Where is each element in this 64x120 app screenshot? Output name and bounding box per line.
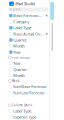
- button[interactable]: Assistant: [50, 2, 54, 20]
- button[interactable]: Label Type: [8, 108, 49, 114]
- button[interactable]: Month: [8, 72, 49, 78]
- staticText: Month: [13, 73, 24, 78]
- staticText: +: [10, 1, 12, 6]
- button[interactable]: Month: [8, 43, 49, 49]
- button[interactable]: Search: [9, 7, 49, 11]
- staticText: Month: [13, 43, 24, 49]
- staticText: SumLast Forecast: [13, 90, 44, 95]
- staticText: Column Labels: [12, 103, 32, 107]
- staticText: Category: [13, 19, 29, 24]
- staticText: Label Type: [13, 25, 31, 30]
- button[interactable]: Base Actual Over All: [8, 31, 49, 37]
- button[interactable]: Year: [8, 49, 49, 55]
- staticText: Quarter: [13, 67, 27, 72]
- staticText: Search: [13, 8, 21, 11]
- staticText: Week: [12, 79, 19, 83]
- staticText: Quarter: [13, 37, 27, 43]
- button[interactable]: Year: [8, 60, 49, 66]
- button[interactable]: App icon: [9, 1, 14, 6]
- staticText: Year: [13, 61, 21, 66]
- staticText: Price Groups: [12, 56, 30, 59]
- staticText: Base Forecast Over All: [13, 13, 44, 18]
- staticText: iPad Build: [15, 1, 35, 6]
- staticText: Expense Type: [13, 114, 36, 120]
- staticText: Label Type: [13, 108, 31, 113]
- button[interactable]: Base Forecast Over All: [8, 12, 49, 19]
- button[interactable]: Category: [8, 19, 49, 25]
- button[interactable]: SumLast Forecast: [8, 90, 49, 96]
- button[interactable]: Expense Type: [8, 114, 49, 120]
- staticText: Year: [13, 49, 21, 55]
- staticText: Base Actual Over All: [13, 31, 44, 36]
- staticText: SumBase Forecast: [13, 84, 46, 89]
- button[interactable]: Quarter: [8, 37, 49, 43]
- button[interactable]: Label Type: [8, 25, 49, 31]
- button[interactable]: SumBase Forecast: [8, 83, 49, 90]
- button[interactable]: Quarter: [8, 66, 49, 72]
